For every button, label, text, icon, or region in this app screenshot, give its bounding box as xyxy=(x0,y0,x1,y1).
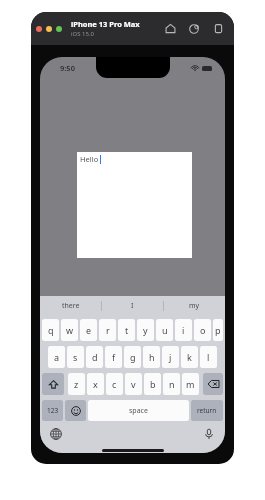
staticText: s xyxy=(73,351,78,363)
staticText: return xyxy=(197,406,217,415)
staticText: Hello xyxy=(80,154,99,164)
button[interactable]: I xyxy=(102,296,163,315)
button[interactable]: o xyxy=(194,319,211,341)
staticText: I xyxy=(131,301,134,311)
staticText: g xyxy=(130,351,136,363)
button[interactable]: q xyxy=(42,319,59,341)
button[interactable]: y xyxy=(137,319,154,341)
button[interactable]: Window control xyxy=(36,26,42,32)
button[interactable]: i xyxy=(175,319,192,341)
staticText: there xyxy=(62,301,80,311)
button[interactable]: p xyxy=(213,319,223,341)
staticText: f xyxy=(112,351,116,363)
button[interactable]: h xyxy=(143,346,160,368)
button[interactable]: 123 xyxy=(42,400,63,421)
button[interactable]: t xyxy=(118,319,135,341)
staticText: c xyxy=(112,378,117,390)
staticText: l xyxy=(207,351,210,363)
button[interactable]: r xyxy=(99,319,116,341)
staticText: k xyxy=(187,351,192,363)
button[interactable]: f xyxy=(105,346,122,368)
staticText: u xyxy=(162,324,168,336)
button[interactable]: n xyxy=(163,373,180,395)
button[interactable]: Rotate xyxy=(212,22,225,35)
button[interactable]: Delete xyxy=(203,373,223,395)
button[interactable]: u xyxy=(156,319,173,341)
button[interactable]: Window control xyxy=(46,26,52,32)
button[interactable]: e xyxy=(80,319,97,341)
staticText: h xyxy=(149,351,155,363)
staticText: r xyxy=(106,324,110,336)
button[interactable]: s xyxy=(67,346,84,368)
staticText: j xyxy=(169,351,172,363)
staticText: a xyxy=(54,351,60,363)
button[interactable]: z xyxy=(68,373,85,395)
button[interactable]: v xyxy=(125,373,142,395)
button[interactable]: return xyxy=(191,400,223,421)
staticText: n xyxy=(169,378,175,390)
button[interactable]: c xyxy=(106,373,123,395)
staticText: iPhone 13 Pro Max xyxy=(71,19,140,29)
button[interactable]: there xyxy=(40,296,101,315)
button[interactable]: Shift xyxy=(42,373,64,395)
button[interactable]: j xyxy=(162,346,179,368)
staticText: e xyxy=(86,324,92,336)
staticText: q xyxy=(48,324,54,336)
button[interactable]: k xyxy=(181,346,198,368)
button[interactable]: a xyxy=(48,346,65,368)
staticText: v xyxy=(131,378,136,390)
button[interactable]: g xyxy=(124,346,141,368)
button[interactable]: Dictate xyxy=(203,428,215,440)
staticText: x xyxy=(93,378,98,390)
button[interactable]: b xyxy=(144,373,161,395)
button[interactable]: Screenshot xyxy=(188,22,201,35)
staticText: space xyxy=(129,406,148,416)
staticText: d xyxy=(92,351,98,363)
staticText: m xyxy=(186,378,195,390)
staticText: 9:50 xyxy=(60,63,75,73)
button[interactable]: Emoji xyxy=(65,400,86,421)
button[interactable]: Home xyxy=(164,22,177,35)
staticText: o xyxy=(200,324,206,336)
button[interactable]: my xyxy=(164,296,225,315)
staticText: b xyxy=(150,378,156,390)
staticText: i xyxy=(182,324,185,336)
staticText: z xyxy=(74,378,79,390)
staticText: 123 xyxy=(47,406,59,415)
button[interactable]: Change keyboard language xyxy=(50,428,62,440)
staticText: my xyxy=(189,301,200,311)
button[interactable]: Window control xyxy=(56,26,62,32)
staticText: y xyxy=(143,324,148,336)
button[interactable]: m xyxy=(182,373,199,395)
button[interactable]: d xyxy=(86,346,103,368)
staticText: iOS 15.0 xyxy=(71,30,94,38)
button[interactable]: Hello xyxy=(77,152,192,258)
staticText: t xyxy=(125,324,129,336)
staticText: p xyxy=(215,324,221,336)
button[interactable]: space xyxy=(88,400,189,421)
staticText: w xyxy=(66,324,74,336)
button[interactable]: x xyxy=(87,373,104,395)
button[interactable]: w xyxy=(61,319,78,341)
button[interactable]: l xyxy=(200,346,217,368)
